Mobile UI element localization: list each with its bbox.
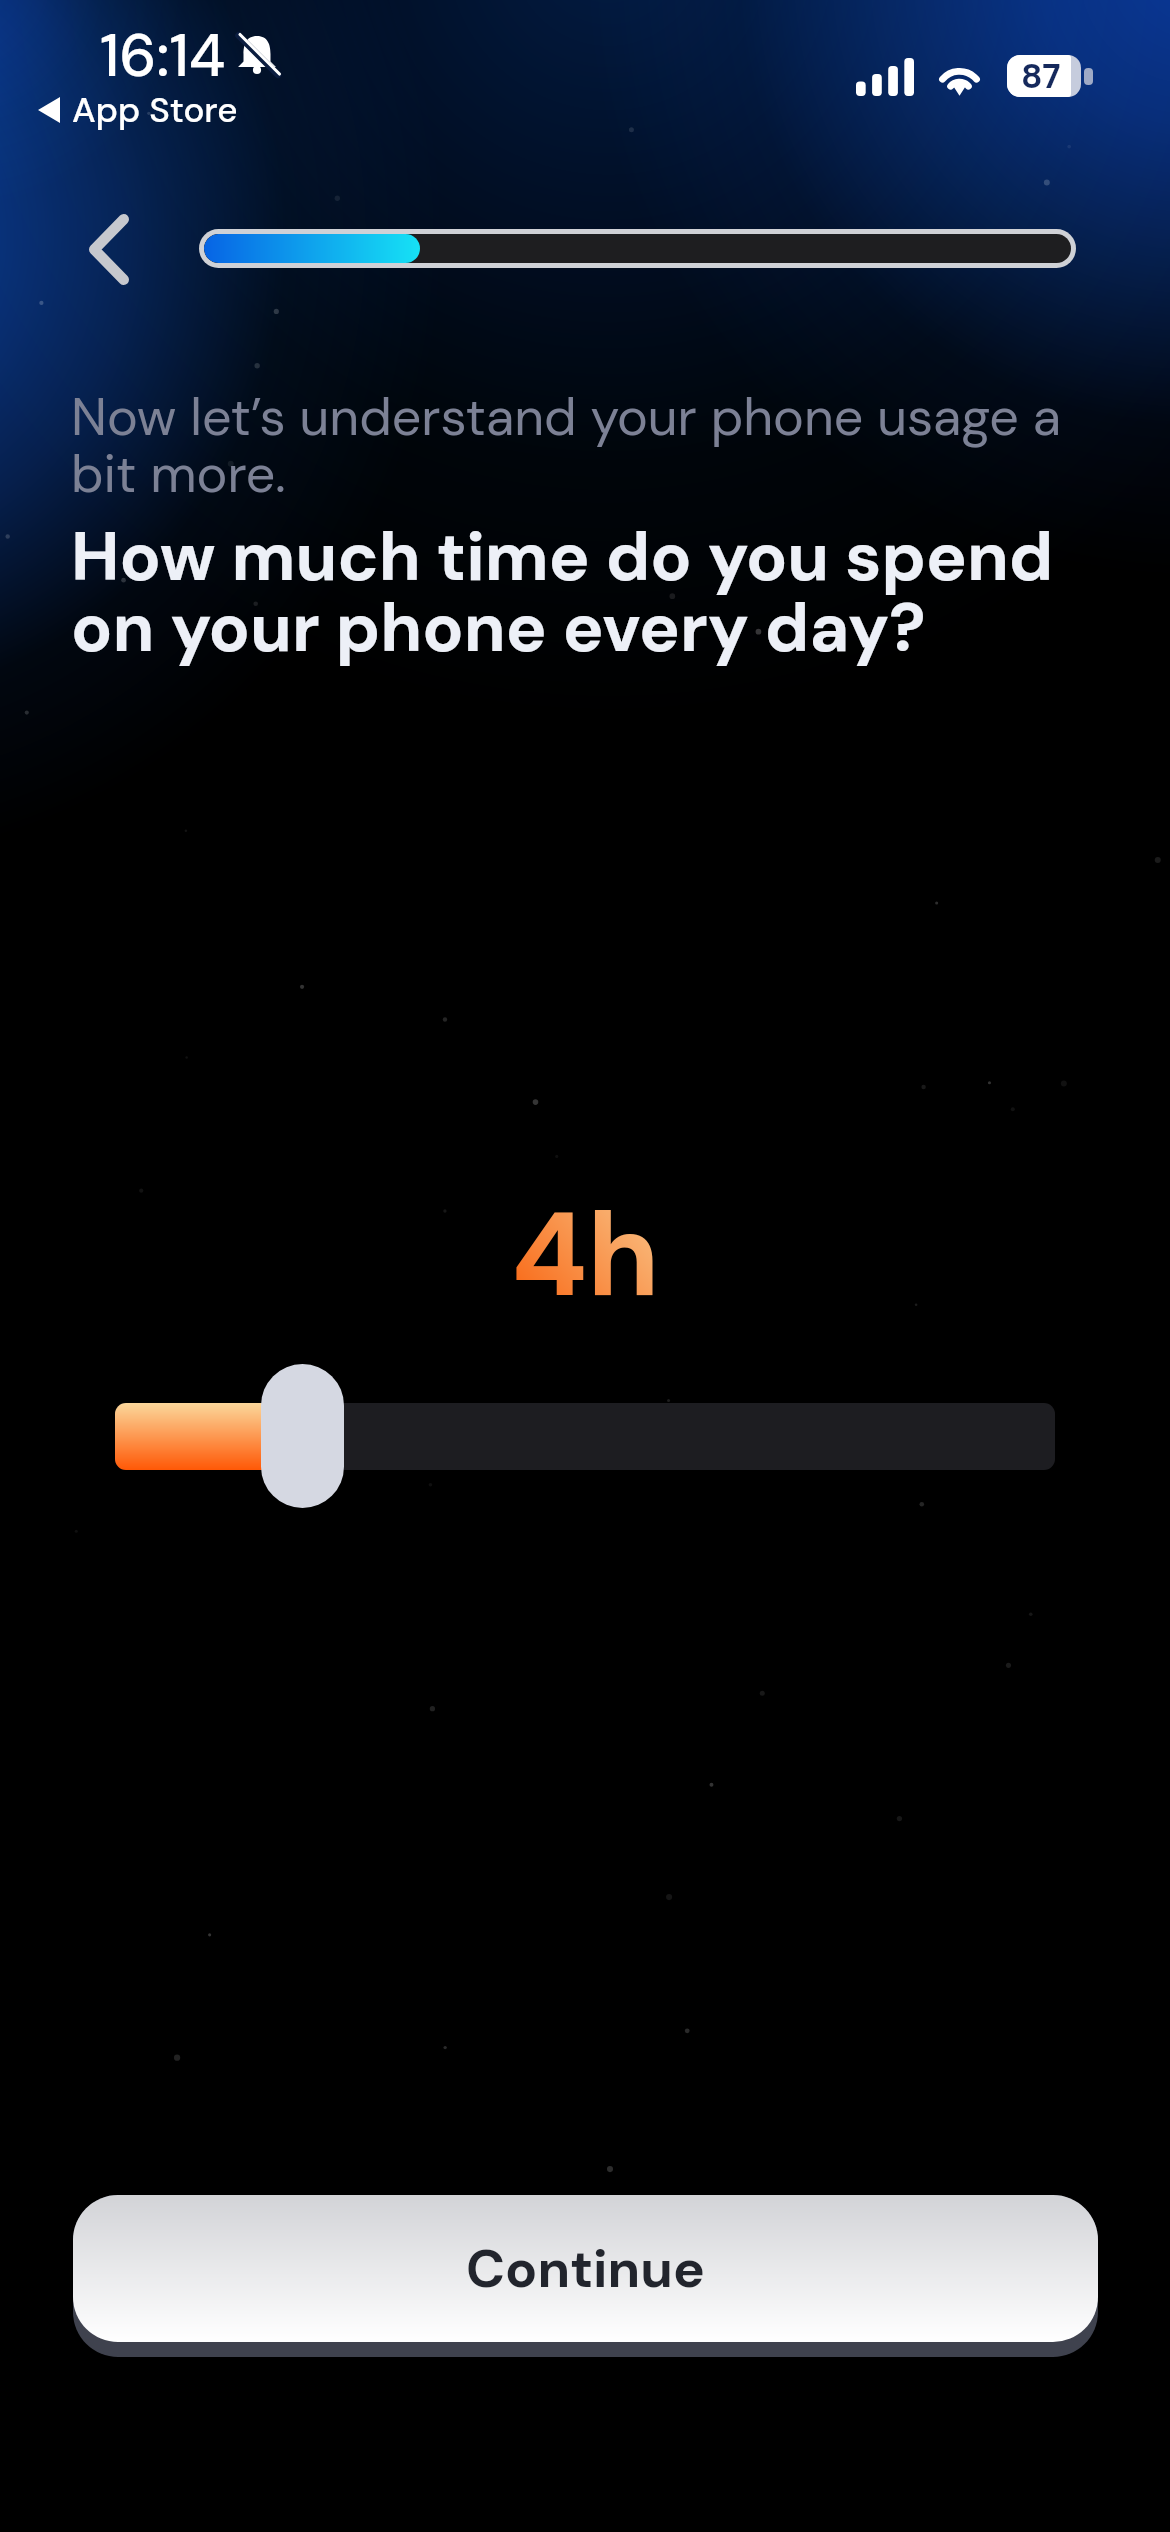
button[interactable]: Daily phone usage: 4 hours <box>115 1364 1055 1508</box>
staticText: 87 <box>1021 54 1061 96</box>
staticText: 4h <box>511 1179 660 1331</box>
staticText: How much time do you spend on your phone… <box>71 513 1131 672</box>
button[interactable]: Back <box>59 197 159 301</box>
staticText: App Store <box>72 87 238 133</box>
staticText: Continue <box>466 2234 705 2303</box>
button[interactable]: Continue <box>73 2195 1098 2357</box>
staticText: 16:14 <box>100 17 226 94</box>
staticText: Now let’s understand your phone usage a … <box>71 383 1131 508</box>
